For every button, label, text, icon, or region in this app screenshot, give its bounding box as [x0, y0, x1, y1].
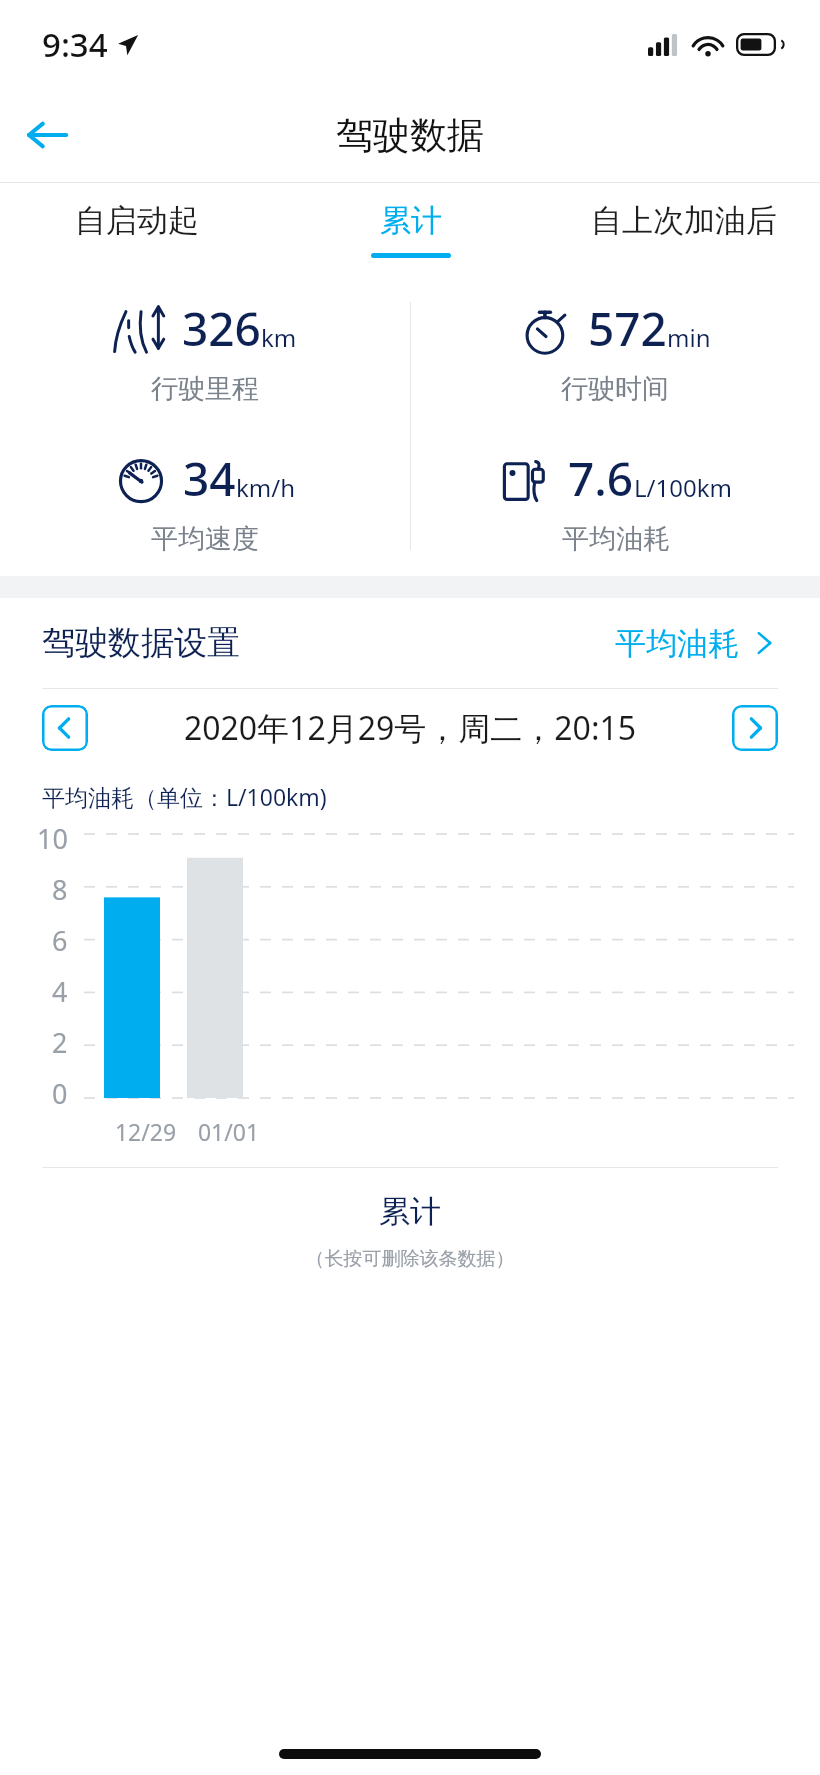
staticText: 6	[52, 922, 68, 959]
staticText: 平均速度	[151, 522, 259, 556]
button[interactable]: 驾驶数据设置	[0, 598, 820, 688]
staticText: 平均油耗	[562, 522, 670, 556]
staticText: 行驶时间	[561, 372, 669, 406]
staticText: 9:34	[42, 22, 108, 67]
staticText: 10	[37, 820, 68, 857]
staticText: 7.6	[568, 447, 634, 510]
staticText: 累计	[0, 1192, 820, 1231]
staticText: 累计	[380, 201, 442, 240]
staticText: km/h	[236, 471, 296, 504]
button[interactable]: 34	[0, 426, 410, 576]
button[interactable]: 自启动起	[0, 183, 274, 276]
staticText: 2020年12月29号，周二，20:15	[88, 706, 732, 750]
button[interactable]: 572	[410, 276, 820, 426]
staticText: （长按可删除该条数据）	[0, 1247, 820, 1271]
staticText: 572	[588, 297, 667, 360]
staticText: 平均油耗（单位：L/100km)	[42, 781, 327, 812]
staticText: 2	[52, 1024, 68, 1061]
staticText: 0	[52, 1075, 68, 1112]
staticText: 8	[52, 871, 68, 908]
button[interactable]: Back	[18, 106, 76, 164]
button[interactable]: 326	[0, 276, 410, 426]
staticText: 01/01	[187, 1116, 270, 1147]
staticText: min	[667, 321, 711, 354]
staticText: 驾驶数据设置	[42, 622, 240, 664]
staticText: 326	[182, 297, 261, 360]
button[interactable]: Next day	[732, 705, 778, 751]
staticText: km	[261, 321, 297, 354]
staticText: 驾驶数据	[336, 112, 484, 159]
button[interactable]: 7.6	[410, 426, 820, 576]
staticText: 自启动起	[75, 201, 199, 240]
staticText: 自上次加油后	[591, 201, 777, 240]
staticText: 行驶里程	[151, 372, 259, 406]
button[interactable]: 累计	[274, 183, 547, 276]
button[interactable]: Previous day	[42, 705, 88, 751]
staticText: 4	[52, 973, 68, 1010]
staticText: 平均油耗	[615, 624, 739, 663]
staticText: 12/29	[104, 1116, 187, 1147]
staticText: 34	[183, 447, 236, 510]
button[interactable]: 自上次加油后	[547, 183, 820, 276]
staticText: L/100km	[634, 471, 732, 504]
